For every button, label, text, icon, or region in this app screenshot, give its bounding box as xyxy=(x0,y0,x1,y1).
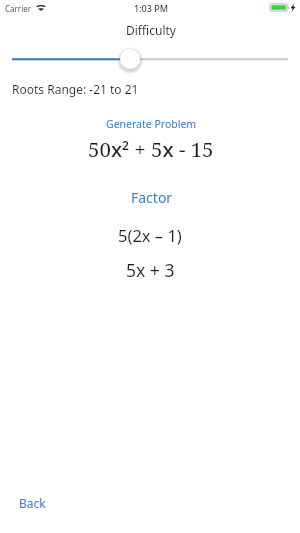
staticText: Difficulty xyxy=(126,22,176,38)
button[interactable]: Factor xyxy=(131,188,173,207)
staticText: Generate Problem xyxy=(106,117,197,131)
staticText: 1:03 PM xyxy=(134,2,168,14)
staticText: 50x2 + 5x - 15 xyxy=(88,135,214,163)
staticText: 5(2x – 1) xyxy=(118,224,182,246)
staticText: 5x + 3 xyxy=(126,258,175,282)
staticText: Roots Range: -21 to 21 xyxy=(12,81,139,97)
button[interactable]: Difficulty slider xyxy=(0,46,300,72)
button[interactable]: Generate Problem xyxy=(106,117,197,131)
staticText: Carrier xyxy=(5,3,32,14)
staticText: Back xyxy=(19,495,46,511)
button[interactable]: Back xyxy=(19,495,46,511)
staticText: Factor xyxy=(131,188,173,207)
